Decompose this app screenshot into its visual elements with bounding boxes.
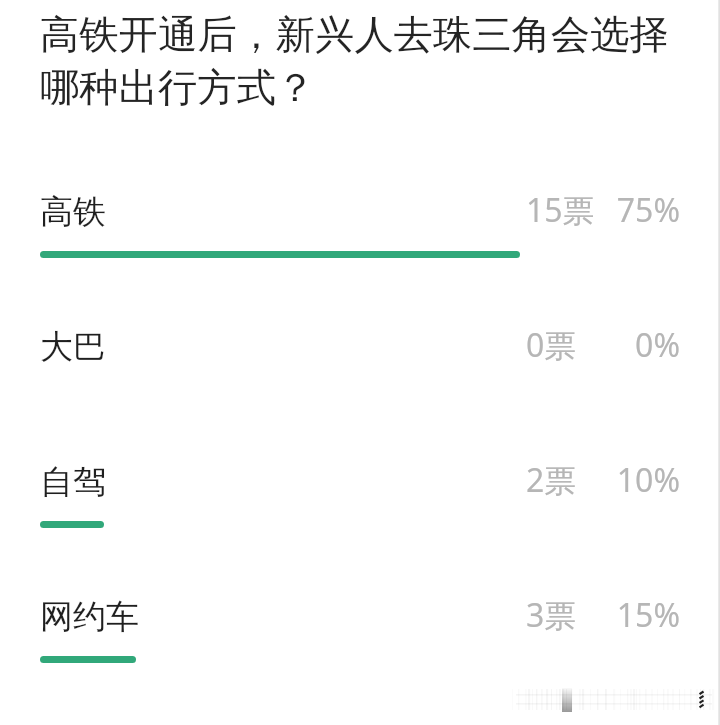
- staticText: 15票: [526, 188, 595, 232]
- staticText: 15%: [616, 593, 680, 637]
- button[interactable]: 网约车: [0, 596, 720, 706]
- staticText: 高铁开通后，新兴人去珠三角会选择哪种出行方式？: [40, 10, 680, 113]
- staticText: 自驾: [40, 461, 106, 503]
- staticText: 75%: [616, 188, 680, 232]
- staticText: 大巴: [40, 326, 106, 368]
- staticText: 3票: [526, 593, 577, 637]
- button[interactable]: 大巴: [0, 326, 720, 436]
- staticText: 0%: [635, 323, 680, 367]
- button[interactable]: 自驾: [0, 461, 720, 571]
- staticText: 高铁: [40, 191, 106, 233]
- staticText: 2票: [526, 458, 577, 502]
- staticText: 0票: [526, 323, 577, 367]
- staticText: 10%: [616, 458, 680, 502]
- button[interactable]: 高铁: [0, 191, 720, 301]
- staticText: 网约车: [40, 596, 139, 638]
